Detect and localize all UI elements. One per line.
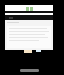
button[interactable]: Toolbar [5,15,53,20]
button[interactable]: Home [20,69,39,72]
